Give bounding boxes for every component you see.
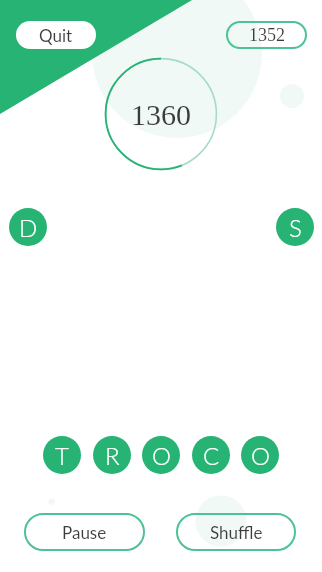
- staticText: O: [251, 441, 270, 470]
- staticText: O: [152, 441, 171, 470]
- staticText: R: [105, 441, 120, 470]
- button[interactable]: C: [192, 436, 230, 474]
- button[interactable]: Pause: [24, 513, 145, 551]
- staticText: Pause: [62, 522, 107, 542]
- button[interactable]: 1352: [226, 21, 307, 49]
- button[interactable]: T: [43, 436, 81, 474]
- staticText: Shuffle: [210, 522, 263, 542]
- button[interactable]: Quit: [16, 21, 96, 49]
- button[interactable]: D: [9, 208, 47, 246]
- staticText: D: [19, 213, 38, 242]
- button[interactable]: R: [93, 436, 131, 474]
- staticText: Quit: [39, 25, 73, 45]
- staticText: 1352: [249, 25, 285, 45]
- staticText: C: [203, 441, 220, 470]
- button[interactable]: O: [142, 436, 180, 474]
- staticText: 1360: [131, 98, 191, 131]
- staticText: S: [289, 213, 302, 242]
- button[interactable]: S: [276, 208, 314, 246]
- button[interactable]: Shuffle: [176, 513, 296, 551]
- button[interactable]: O: [241, 436, 279, 474]
- staticText: T: [55, 441, 69, 470]
